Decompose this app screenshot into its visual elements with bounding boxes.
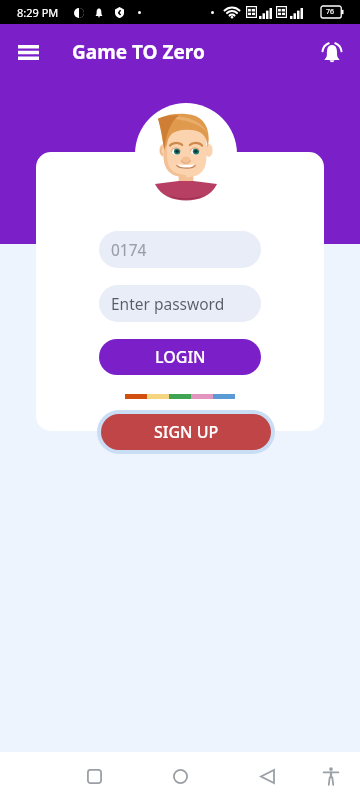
button[interactable]: Menu bbox=[8, 32, 48, 72]
button[interactable]: Recents bbox=[70, 752, 118, 800]
button[interactable]: Back bbox=[243, 752, 291, 800]
button[interactable]: Accessibility bbox=[307, 752, 355, 800]
staticText: Enter password bbox=[111, 293, 225, 314]
staticText: Game TO Zero bbox=[72, 39, 205, 65]
button[interactable]: Enter password bbox=[99, 285, 261, 322]
staticText: 76 bbox=[326, 7, 335, 17]
button[interactable]: Home bbox=[156, 752, 204, 800]
staticText: SIGN UP bbox=[154, 421, 219, 443]
button[interactable]: SIGN UP bbox=[101, 414, 271, 450]
staticText: 0174 bbox=[111, 239, 147, 260]
staticText: 8:29 PM bbox=[17, 5, 59, 20]
button[interactable]: Notifications bbox=[312, 32, 352, 72]
staticText: LOGIN bbox=[155, 346, 206, 368]
button[interactable]: LOGIN bbox=[99, 339, 261, 375]
button[interactable]: 0174 bbox=[99, 231, 261, 268]
